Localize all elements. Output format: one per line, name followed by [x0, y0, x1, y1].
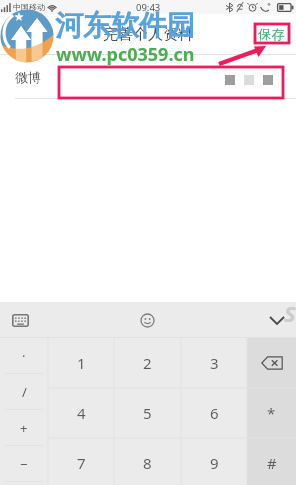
- staticText: 7: [77, 453, 86, 473]
- button[interactable]: Backspace: [247, 338, 296, 388]
- button[interactable]: /: [0, 374, 48, 410]
- button[interactable]: 7: [48, 438, 114, 485]
- button[interactable]: 5: [114, 388, 181, 438]
- staticText: *: [267, 403, 276, 423]
- button[interactable]: ·: [0, 338, 48, 374]
- staticText: S: [284, 298, 296, 328]
- staticText: 完善个人资料: [103, 25, 193, 44]
- staticText: 5: [143, 403, 152, 423]
- staticText: −: [20, 455, 28, 473]
- staticText: #: [267, 453, 277, 473]
- button[interactable]: 3: [181, 338, 247, 388]
- staticText: 9: [210, 453, 219, 473]
- button[interactable]: 微博: [0, 55, 296, 99]
- staticText: ·: [22, 347, 26, 365]
- button[interactable]: Emoji: [131, 302, 164, 338]
- staticText: 3: [210, 353, 219, 373]
- button[interactable]: 取消: [6, 21, 40, 48]
- staticText: 4: [77, 403, 86, 423]
- staticText: 2: [143, 353, 152, 373]
- button[interactable]: *: [247, 388, 296, 438]
- button[interactable]: +: [0, 410, 48, 446]
- button[interactable]: −: [0, 446, 48, 482]
- staticText: 09:43: [136, 1, 161, 14]
- button[interactable]: 6: [181, 388, 247, 438]
- staticText: /: [22, 383, 27, 401]
- staticText: 8: [143, 453, 152, 473]
- button[interactable]: 1: [48, 338, 114, 388]
- button[interactable]: 8: [114, 438, 181, 485]
- staticText: 取消: [11, 27, 35, 42]
- staticText: 1: [77, 353, 86, 373]
- button[interactable]: 保存: [253, 20, 290, 49]
- button[interactable]: Hide keyboard: [260, 302, 293, 338]
- button[interactable]: Switch keyboard: [4, 302, 37, 338]
- staticText: 保存: [258, 26, 285, 43]
- staticText: +: [20, 419, 28, 437]
- button[interactable]: #: [247, 438, 296, 485]
- staticText: 6: [210, 403, 219, 423]
- staticText: 河东软件园: [55, 8, 195, 43]
- button[interactable]: 9: [181, 438, 247, 485]
- staticText: 中国移动: [13, 2, 45, 12]
- button[interactable]: 4: [48, 388, 114, 438]
- staticText: 微博: [15, 69, 41, 85]
- staticText: www.pc0359.cn: [56, 42, 195, 67]
- button[interactable]: 2: [114, 338, 181, 388]
